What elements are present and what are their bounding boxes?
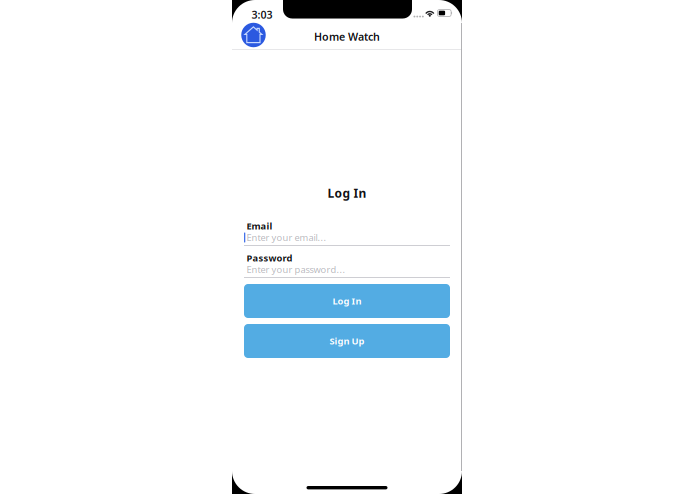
staticText: Home Watch: [314, 29, 380, 44]
staticText: Log In: [327, 185, 366, 201]
staticText: 3:03: [251, 7, 272, 22]
staticText: Enter your email...: [246, 231, 326, 244]
staticText: Email: [246, 220, 272, 232]
button[interactable]: Sign Up: [244, 324, 450, 358]
staticText: Enter your password...: [246, 263, 345, 276]
staticText: Log In: [332, 295, 361, 307]
staticText: Password: [246, 252, 292, 264]
staticText: Sign Up: [329, 335, 364, 347]
button[interactable]: Log In: [244, 284, 450, 318]
button[interactable]: Home: [239, 21, 267, 49]
